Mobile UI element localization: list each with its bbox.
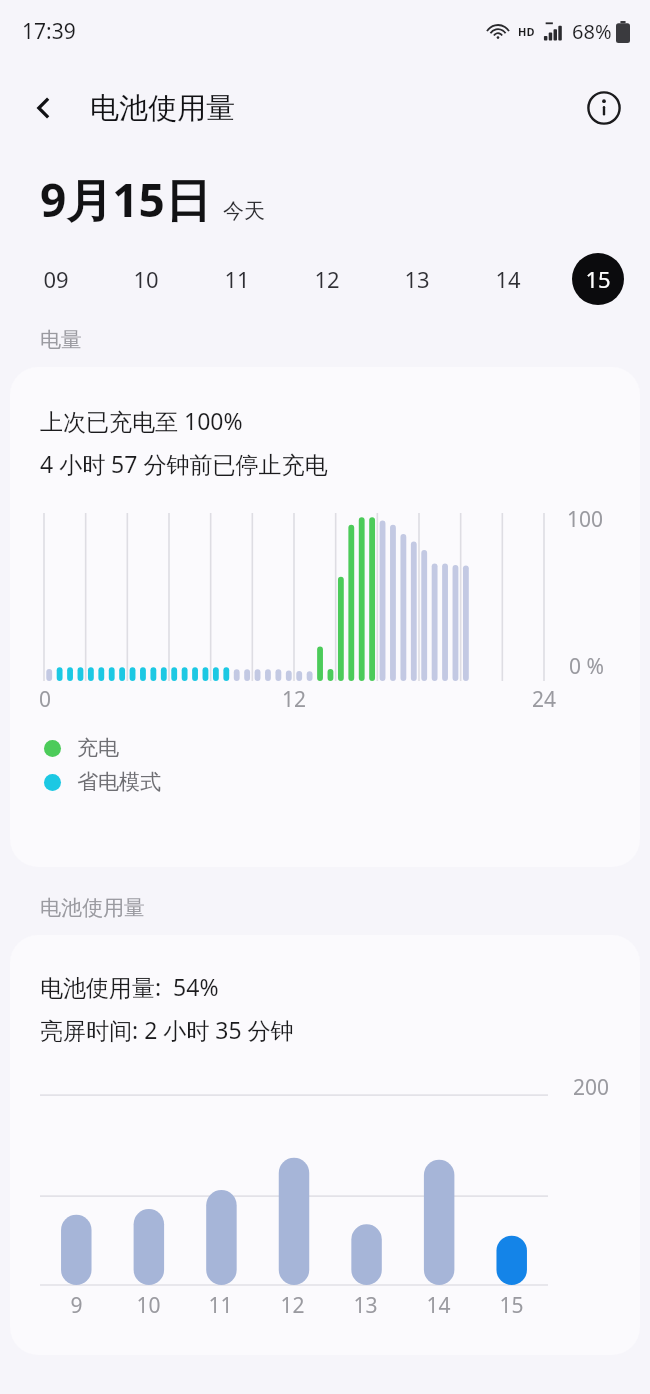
staticText: 15	[499, 1291, 524, 1320]
button[interactable]: 10	[120, 253, 172, 305]
staticText: 12	[314, 264, 340, 294]
button[interactable]: 上次已充电至 100%	[10, 367, 640, 867]
staticText: 9月15日	[40, 168, 211, 231]
staticText: 09	[43, 264, 69, 294]
staticText: 12	[280, 1291, 305, 1320]
button[interactable]: Back	[16, 80, 72, 136]
staticText: 200	[573, 1073, 610, 1102]
staticText: 9	[70, 1291, 83, 1320]
staticText: 100	[567, 505, 604, 534]
staticText: 15	[585, 264, 611, 294]
staticText: 14	[426, 1291, 451, 1320]
staticText: 17:39	[22, 17, 76, 46]
staticText: 13	[353, 1291, 378, 1320]
staticText: 电池使用量	[90, 90, 235, 127]
staticText: 68%	[572, 18, 612, 45]
button[interactable]: 11	[211, 253, 263, 305]
button[interactable]: 13	[391, 253, 443, 305]
staticText: 今天	[223, 198, 265, 224]
staticText: 电池使用量: 54%	[40, 971, 219, 1002]
staticText: 亮屏时间: 2 小时 35 分钟	[40, 1014, 294, 1045]
staticText: 12	[282, 685, 307, 714]
button[interactable]: 15	[572, 253, 624, 305]
staticText: 11	[208, 1291, 233, 1320]
staticText: 14	[495, 264, 521, 294]
staticText: 13	[404, 264, 430, 294]
staticText: 上次已充电至 100%	[40, 405, 243, 436]
staticText: 省电模式	[77, 769, 161, 795]
button[interactable]: 12	[301, 253, 353, 305]
staticText: 10	[133, 264, 159, 294]
staticText: 电量	[40, 327, 82, 353]
button[interactable]: 14	[482, 253, 534, 305]
staticText: 0	[39, 685, 52, 714]
staticText: 0 %	[569, 652, 604, 681]
button[interactable]: 电池使用量: 54%	[10, 935, 640, 1355]
staticText: 电池使用量	[40, 895, 145, 921]
staticText: 11	[224, 264, 250, 294]
staticText: 4 小时 57 分钟前已停止充电	[40, 448, 328, 479]
staticText: HD	[518, 24, 535, 39]
button[interactable]: 09	[30, 253, 82, 305]
button[interactable]: Information	[576, 80, 632, 136]
staticText: 充电	[77, 735, 119, 761]
staticText: 24	[532, 685, 557, 714]
staticText: 10	[136, 1291, 161, 1320]
